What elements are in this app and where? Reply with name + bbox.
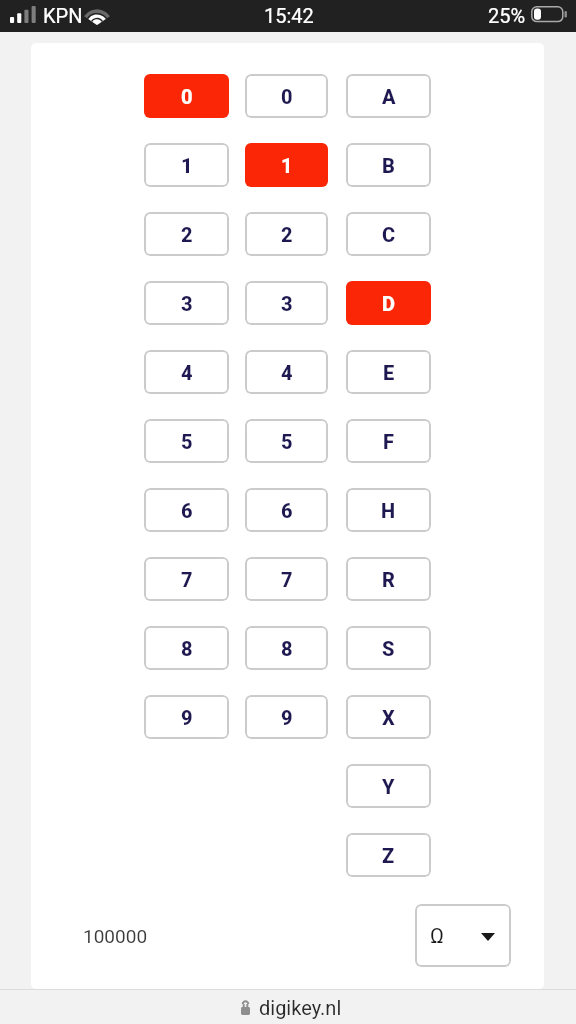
staticText: digikey.nl: [259, 996, 342, 1019]
staticText: 7: [281, 568, 293, 591]
other: Mobile signal strength: [10, 6, 36, 23]
staticText: 4: [281, 361, 293, 384]
button[interactable]: Secure connection: [0, 990, 576, 1024]
button[interactable]: C: [346, 212, 431, 256]
staticText: H: [381, 499, 396, 522]
button[interactable]: 2: [245, 212, 328, 256]
staticText: B: [382, 154, 395, 177]
button[interactable]: 1: [245, 143, 328, 187]
button[interactable]: 8: [144, 626, 229, 670]
staticText: 9: [181, 706, 193, 729]
button[interactable]: 6: [245, 488, 328, 532]
button[interactable]: Ω: [415, 904, 511, 967]
staticText: 8: [281, 637, 293, 660]
button[interactable]: S: [346, 626, 431, 670]
staticText: E: [383, 361, 395, 384]
staticText: 2: [181, 223, 193, 246]
staticText: 3: [181, 292, 193, 315]
staticText: 25%: [488, 4, 526, 27]
staticText: 6: [181, 499, 193, 522]
staticText: 1: [181, 154, 193, 177]
button[interactable]: 0: [245, 74, 328, 118]
staticText: Y: [382, 775, 395, 798]
button[interactable]: 4: [144, 350, 229, 394]
staticText: 0: [181, 85, 193, 108]
button[interactable]: 8: [245, 626, 328, 670]
button[interactable]: H: [346, 488, 431, 532]
button[interactable]: 7: [144, 557, 229, 601]
staticText: X: [382, 706, 395, 729]
button[interactable]: X: [346, 695, 431, 739]
staticText: F: [383, 430, 394, 453]
button[interactable]: 2: [144, 212, 229, 256]
button[interactable]: 9: [144, 695, 229, 739]
staticText: Z: [382, 844, 395, 867]
staticText: 15:42: [264, 4, 314, 27]
button[interactable]: Z: [346, 833, 431, 877]
staticText: 0: [281, 85, 293, 108]
staticText: C: [382, 223, 396, 246]
button[interactable]: 3: [245, 281, 328, 325]
button[interactable]: 4: [245, 350, 328, 394]
staticText: 7: [181, 568, 193, 591]
staticText: 5: [181, 430, 193, 453]
staticText: 9: [281, 706, 293, 729]
staticText: Ω: [430, 924, 444, 949]
button[interactable]: D: [346, 281, 431, 325]
staticText: 4: [181, 361, 193, 384]
button[interactable]: E: [346, 350, 431, 394]
other: Battery 25 percent: [531, 6, 569, 23]
staticText: 6: [281, 499, 293, 522]
staticText: S: [382, 637, 395, 660]
staticText: 5: [281, 430, 293, 453]
button[interactable]: Y: [346, 764, 431, 808]
staticText: R: [382, 568, 395, 591]
button[interactable]: 7: [245, 557, 328, 601]
staticText: 3: [281, 292, 293, 315]
button[interactable]: R: [346, 557, 431, 601]
button[interactable]: 0: [144, 74, 229, 118]
staticText: 2: [281, 223, 293, 246]
staticText: 100000: [83, 925, 148, 947]
other: Secure connection: [241, 1000, 250, 1015]
button[interactable]: 5: [245, 419, 328, 463]
staticText: 1: [281, 154, 293, 177]
button[interactable]: 1: [144, 143, 229, 187]
other: Wi-Fi connected: [84, 6, 110, 25]
button[interactable]: F: [346, 419, 431, 463]
staticText: 8: [181, 637, 193, 660]
button[interactable]: 9: [245, 695, 328, 739]
button[interactable]: 3: [144, 281, 229, 325]
button[interactable]: 6: [144, 488, 229, 532]
button[interactable]: B: [346, 143, 431, 187]
staticText: KPN: [43, 4, 83, 27]
button[interactable]: A: [346, 74, 431, 118]
staticText: A: [382, 85, 396, 108]
button[interactable]: 5: [144, 419, 229, 463]
staticText: D: [382, 292, 395, 315]
